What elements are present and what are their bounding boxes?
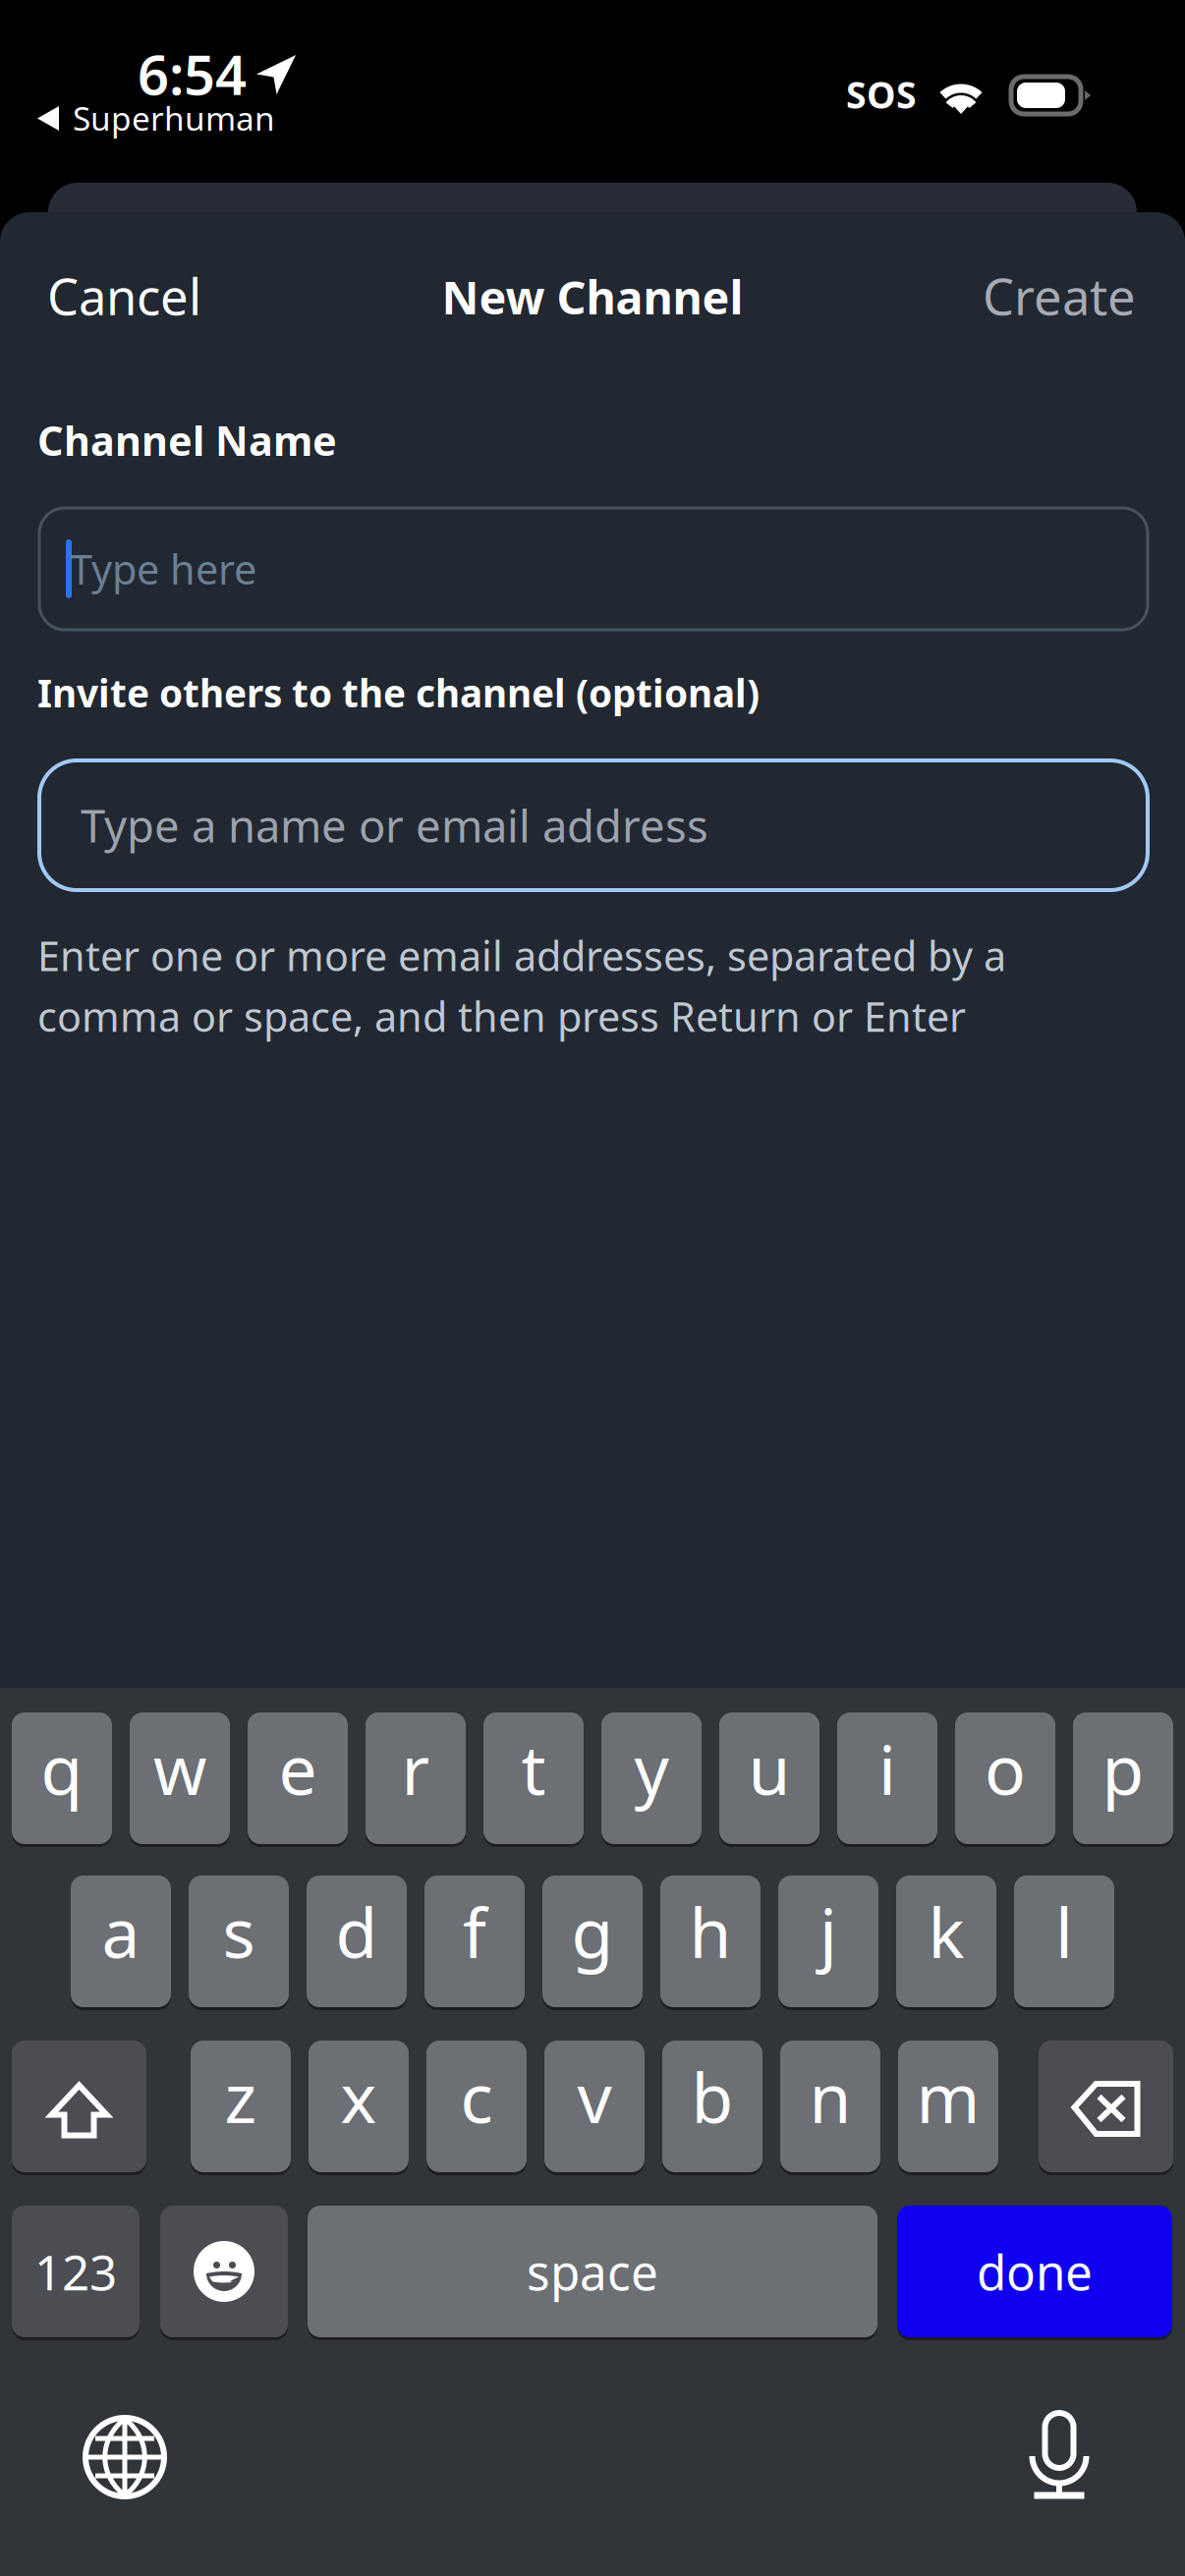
button[interactable]: k <box>896 1876 996 2010</box>
button[interactable]: h <box>660 1876 761 2010</box>
button[interactable]: p <box>1073 1712 1173 1847</box>
staticText: r <box>401 1723 430 1814</box>
button[interactable]: s <box>189 1876 289 2010</box>
staticText: k <box>928 1886 964 1977</box>
staticText: b <box>691 2051 734 2142</box>
button[interactable]: e <box>248 1712 348 1847</box>
button[interactable]: Dictation <box>0 0 118 118</box>
staticText: Cancel <box>47 263 201 329</box>
button[interactable]: r <box>366 1712 466 1847</box>
staticText: 123 <box>34 2239 117 2304</box>
button[interactable]: t <box>483 1712 584 1847</box>
staticText: Channel Name <box>37 413 337 467</box>
staticText: t <box>521 1723 546 1814</box>
staticText: o <box>985 1723 1026 1814</box>
button[interactable]: Emoji <box>160 2206 288 2340</box>
staticText: done <box>977 2239 1093 2304</box>
staticText: a <box>102 1886 140 1977</box>
staticText: New Channel <box>442 266 743 327</box>
button[interactable]: 123 <box>12 2206 140 2340</box>
staticText: 6:54 <box>138 37 247 110</box>
staticText: Type a name or email address <box>81 796 708 855</box>
button[interactable]: o <box>955 1712 1055 1847</box>
button[interactable]: f <box>424 1876 525 2010</box>
staticText: x <box>340 2051 377 2142</box>
staticText: y <box>634 1723 669 1814</box>
staticText: l <box>1055 1886 1073 1977</box>
staticText: Type here <box>70 542 256 596</box>
staticText: g <box>571 1886 614 1977</box>
button[interactable]: j <box>778 1876 878 2010</box>
button[interactable]: Next keyboard <box>0 0 118 118</box>
staticText: m <box>916 2051 980 2142</box>
button[interactable]: Cancel <box>0 0 226 106</box>
staticText: p <box>1102 1723 1144 1814</box>
staticText: s <box>223 1886 255 1977</box>
staticText: j <box>819 1886 837 1977</box>
staticText: e <box>279 1723 317 1814</box>
button[interactable]: a <box>71 1876 171 2010</box>
staticText: Create <box>983 263 1136 329</box>
button[interactable]: g <box>542 1876 643 2010</box>
staticText: Enter one or more email addresses, separ… <box>37 928 1006 982</box>
button[interactable]: y <box>601 1712 702 1847</box>
button[interactable]: i <box>837 1712 937 1847</box>
staticText: q <box>41 1723 83 1814</box>
staticText: v <box>577 2051 612 2142</box>
staticText: h <box>689 1886 732 1977</box>
staticText: u <box>748 1723 790 1814</box>
staticText: c <box>460 2051 493 2142</box>
staticText: Superhuman <box>73 96 275 140</box>
button[interactable]: Shift <box>12 2041 146 2175</box>
button[interactable]: q <box>12 1712 112 1847</box>
staticText: SOS <box>846 70 917 119</box>
button[interactable]: c <box>426 2041 527 2175</box>
button[interactable]: n <box>780 2041 880 2175</box>
button[interactable]: z <box>191 2041 291 2175</box>
button[interactable]: m <box>898 2041 998 2175</box>
button[interactable]: Create <box>0 0 216 106</box>
button[interactable]: w <box>130 1712 230 1847</box>
button[interactable]: x <box>309 2041 409 2175</box>
staticText: n <box>809 2051 851 2142</box>
button[interactable]: d <box>307 1876 407 2010</box>
button[interactable]: v <box>544 2041 645 2175</box>
staticText: d <box>336 1886 378 1977</box>
button[interactable]: Delete <box>1039 2041 1173 2175</box>
button[interactable]: l <box>1014 1876 1114 2010</box>
button[interactable]: space <box>308 2206 877 2340</box>
staticText: z <box>225 2051 257 2142</box>
staticText: comma or space, and then press Return or… <box>37 989 966 1043</box>
staticText: Invite others to the channel (optional) <box>37 667 760 718</box>
staticText: f <box>463 1886 486 1977</box>
staticText: i <box>878 1723 896 1814</box>
button[interactable]: b <box>662 2041 762 2175</box>
staticText: w <box>153 1723 206 1814</box>
button[interactable]: u <box>719 1712 819 1847</box>
staticText: space <box>527 2239 658 2304</box>
button[interactable]: done <box>897 2206 1172 2340</box>
